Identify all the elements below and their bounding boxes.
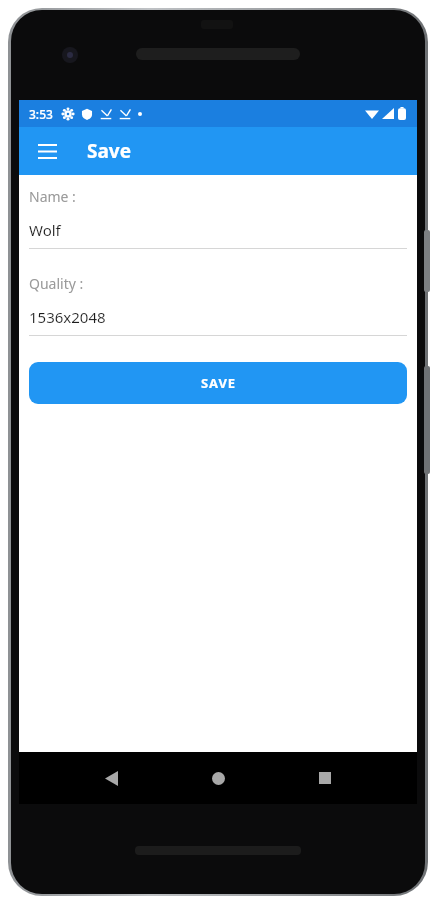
staticText: 3:53	[29, 106, 53, 122]
staticText: 1536x2048	[29, 307, 106, 327]
button[interactable]: 1536x2048	[29, 307, 407, 336]
button[interactable]: Recent apps	[303, 756, 347, 800]
staticText: SAVE	[201, 374, 236, 392]
button[interactable]: SAVE	[29, 362, 407, 404]
button[interactable]: Open navigation menu	[27, 131, 67, 171]
button[interactable]: Wolf	[29, 220, 407, 249]
button[interactable]: Back	[89, 756, 133, 800]
staticText: Quality :	[29, 274, 84, 293]
staticText: Save	[87, 138, 132, 164]
button[interactable]: Home	[196, 756, 240, 800]
staticText: Wolf	[29, 220, 61, 240]
staticText: Name :	[29, 187, 76, 206]
